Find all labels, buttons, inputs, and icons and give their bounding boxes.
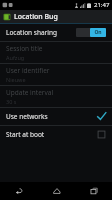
staticText: Aufzug (6, 54, 25, 61)
staticText: User identifier (6, 66, 50, 75)
staticText: Update interval (6, 88, 54, 97)
staticText: Session title (6, 44, 43, 53)
staticText: 21:47 (94, 1, 110, 9)
staticText: Location sharing (6, 28, 76, 37)
button[interactable]: User identifier (0, 64, 112, 85)
staticText: Use networks (6, 112, 97, 121)
other: Use networks (97, 112, 106, 121)
staticText: Location Bug (14, 12, 58, 22)
staticText: On (94, 29, 102, 36)
staticText: 30 s (6, 98, 17, 105)
other: Start at boot (97, 130, 106, 139)
staticText: Start at boot (6, 130, 97, 139)
button[interactable]: Update interval (0, 86, 112, 107)
button[interactable]: Location sharing (0, 24, 112, 41)
button[interactable]: Session title (0, 42, 112, 63)
button[interactable]: Start at boot (0, 126, 112, 143)
button[interactable]: Back (0, 182, 38, 200)
button[interactable]: Recent apps (75, 182, 112, 200)
button[interactable]: Use networks (0, 108, 112, 125)
staticText: Nieuwe (6, 76, 26, 83)
button[interactable]: Home (38, 182, 75, 200)
